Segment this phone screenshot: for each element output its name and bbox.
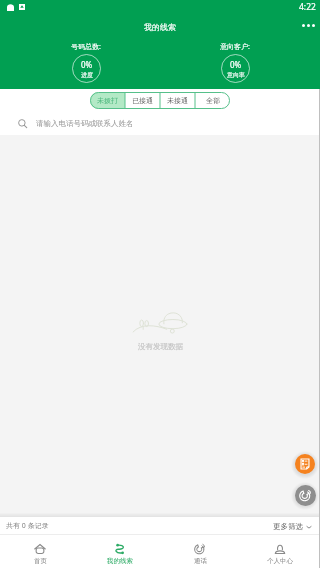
button[interactable]: 首页 xyxy=(0,535,80,568)
staticText: 已接通 xyxy=(132,96,153,105)
button[interactable]: 已接通 xyxy=(125,92,160,109)
staticText: 首页 xyxy=(34,557,47,565)
staticText: 0% xyxy=(81,59,93,70)
staticText: 更多筛选 xyxy=(273,522,303,531)
staticText: 意向客户: xyxy=(220,42,250,52)
staticText: 进度 xyxy=(81,71,93,79)
staticText: 共有 0 条记录 xyxy=(6,521,49,531)
button[interactable]: 全部 xyxy=(195,92,230,109)
staticText: 我的线索 xyxy=(144,22,176,32)
button[interactable]: 未拨打 xyxy=(90,92,125,109)
staticText: 个人中心 xyxy=(267,557,293,565)
staticText: 请输入电话号码或联系人姓名 xyxy=(36,119,134,128)
staticText: 号码总数: xyxy=(71,42,101,52)
button[interactable]: More options xyxy=(298,15,318,35)
button[interactable]: 通话 xyxy=(160,535,240,568)
staticText: 意向率 xyxy=(227,71,245,79)
staticText: 通话 xyxy=(194,557,207,565)
button[interactable]: 未接通 xyxy=(160,92,195,109)
staticText: 0% xyxy=(230,59,242,70)
staticText: 全部 xyxy=(206,96,220,105)
button[interactable]: 我的线索 xyxy=(80,535,160,568)
staticText: 没有发现数据 xyxy=(138,342,183,351)
staticText: 未接通 xyxy=(167,96,188,105)
staticText: 4:22 xyxy=(299,1,316,13)
button[interactable]: Call xyxy=(295,485,316,506)
staticText: 未拨打 xyxy=(97,96,118,105)
button[interactable]: New form xyxy=(295,454,315,474)
button[interactable]: 个人中心 xyxy=(240,535,320,568)
staticText: 我的线索 xyxy=(107,557,133,565)
button[interactable]: 更多筛选 xyxy=(271,522,314,531)
